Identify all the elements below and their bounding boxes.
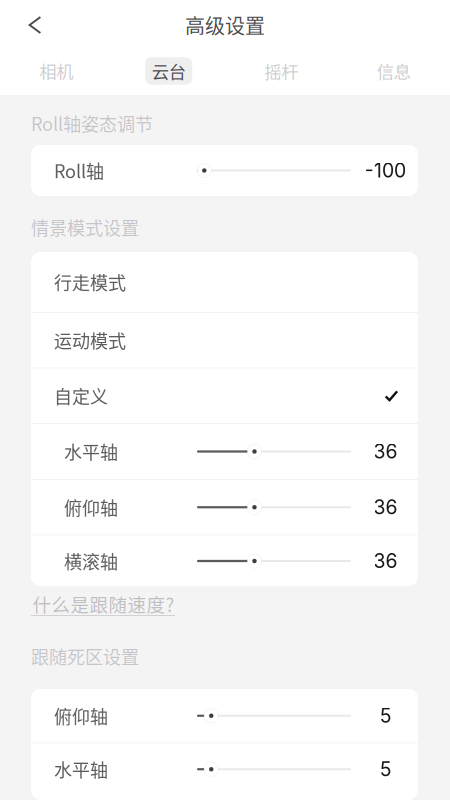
staticText: 36 — [373, 496, 397, 519]
button[interactable]: 相机 — [0, 49, 112, 93]
staticText: 高级设置 — [185, 10, 265, 39]
button[interactable]: 俯仰轴 — [31, 689, 418, 742]
staticText: 相机 — [39, 58, 73, 84]
staticText: 36 — [373, 440, 397, 463]
staticText: 什么是跟随速度? — [32, 591, 174, 617]
button[interactable]: 摇杆 — [225, 49, 337, 93]
button[interactable]: 云台 — [112, 49, 225, 93]
staticText: 36 — [373, 549, 397, 573]
staticText: 自定义 — [54, 383, 108, 409]
button[interactable]: 自定义 — [31, 368, 418, 423]
staticText: 5 — [380, 758, 391, 781]
button[interactable]: Roll轴 — [31, 145, 418, 196]
button[interactable]: 水平轴 — [31, 424, 418, 479]
button[interactable]: 什么是跟随速度? — [31, 593, 181, 621]
staticText: 摇杆 — [264, 58, 298, 84]
button[interactable]: 俯仰轴 — [31, 480, 418, 534]
staticText: 信息 — [377, 58, 411, 84]
staticText: -100 — [365, 159, 406, 182]
staticText: 横滚轴 — [64, 548, 118, 574]
staticText: Roll轴 — [54, 157, 104, 184]
staticText: 5 — [380, 704, 391, 727]
staticText: 俯仰轴 — [64, 494, 118, 520]
button[interactable]: 行走模式 — [31, 252, 418, 312]
button[interactable]: Back — [12, 3, 58, 47]
staticText: 行走模式 — [54, 269, 126, 295]
staticText: 水平轴 — [64, 438, 118, 465]
staticText: 水平轴 — [54, 756, 108, 782]
staticText: 俯仰轴 — [54, 703, 108, 729]
button[interactable]: 信息 — [337, 49, 450, 93]
staticText: 云台 — [152, 58, 186, 84]
button[interactable]: 运动模式 — [31, 313, 418, 367]
button[interactable]: 横滚轴 — [31, 535, 418, 586]
staticText: 运动模式 — [54, 327, 126, 353]
staticText: 跟随死区设置 — [31, 643, 139, 669]
button[interactable]: 水平轴 — [31, 743, 418, 795]
staticText: 情景模式设置 — [31, 214, 139, 240]
staticText: Roll轴姿态调节 — [31, 110, 153, 136]
